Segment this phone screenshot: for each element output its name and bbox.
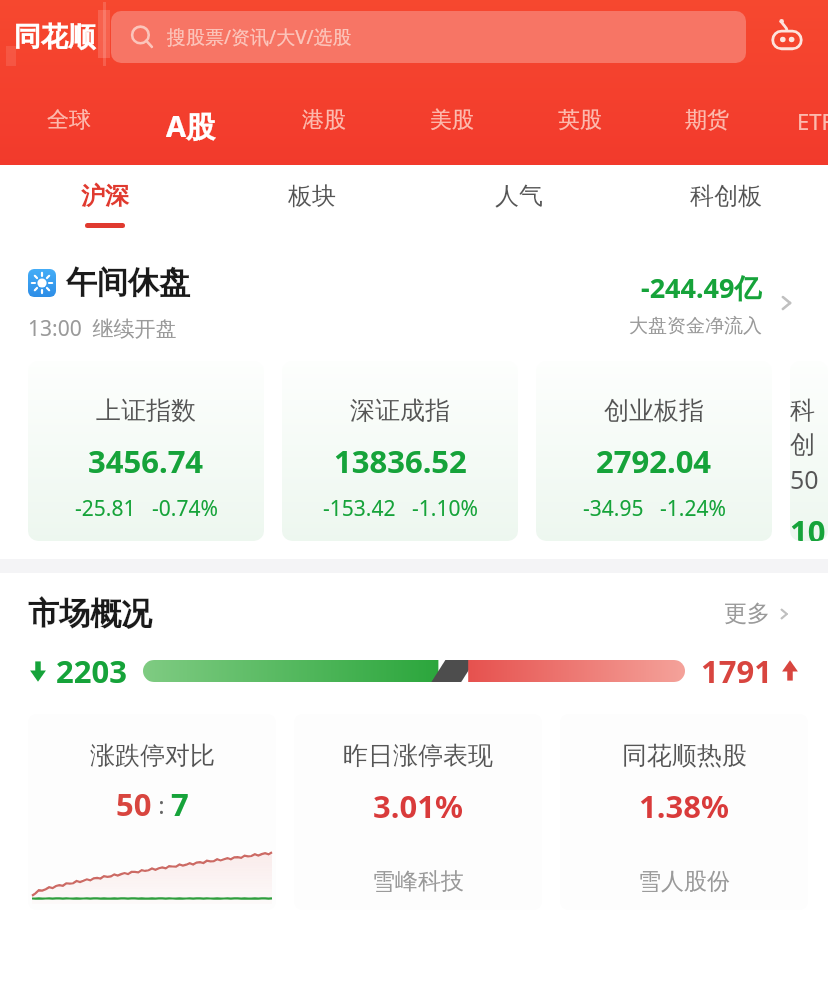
button[interactable]: 同花顺 <box>14 20 95 54</box>
button[interactable]: 沪深 <box>71 175 139 234</box>
staticText: 科创50 <box>790 395 828 496</box>
staticText: 午间休盘 <box>66 263 190 302</box>
button[interactable]: 搜股票/资讯/大V/选股 <box>111 11 746 63</box>
staticText: : <box>152 788 171 821</box>
staticText: 昨日涨停表现 <box>343 740 493 771</box>
staticText: 同花顺热股 <box>622 740 747 771</box>
staticText: 7 <box>171 783 189 825</box>
button[interactable]: 期货 <box>679 96 735 144</box>
staticText: 沪深 <box>81 181 129 211</box>
button[interactable]: 美股 <box>424 96 480 144</box>
button[interactable]: 板块 <box>278 175 346 229</box>
staticText: 2203 <box>56 650 127 692</box>
staticText: 1089.26 <box>790 510 828 541</box>
button[interactable]: AI assistant <box>760 10 814 64</box>
staticText: -25.81 <box>75 494 136 523</box>
button[interactable]: 全球 <box>41 96 97 144</box>
staticText: -153.42 <box>323 494 396 523</box>
button[interactable]: 人气 <box>485 175 553 229</box>
staticText: -1.10% <box>412 494 478 523</box>
staticText: -244.49亿 <box>641 269 762 306</box>
staticText: 3.01% <box>373 785 463 827</box>
staticText: A股 <box>166 106 216 146</box>
staticText: ETF <box>797 106 828 136</box>
staticText: 更多 <box>724 599 770 628</box>
button[interactable]: 深证成指 <box>282 361 518 541</box>
staticText: 全球 <box>47 106 91 134</box>
staticText: -0.74% <box>152 494 218 523</box>
staticText: 雪峰科技 <box>372 867 464 896</box>
staticText: 13836.52 <box>334 440 467 482</box>
staticText: 上证指数 <box>96 395 196 426</box>
staticText: 美股 <box>430 106 474 134</box>
button[interactable]: 科创50 <box>790 361 828 541</box>
staticText: 期货 <box>685 106 729 134</box>
button[interactable]: 上证指数 <box>28 361 264 541</box>
button[interactable]: 同花顺热股 <box>560 714 808 910</box>
button[interactable]: 科创板 <box>680 175 772 229</box>
staticText: 深证成指 <box>350 395 450 426</box>
staticText: 市场概况 <box>28 594 152 633</box>
staticText: 3456.74 <box>88 440 204 482</box>
staticText: 涨跌停对比 <box>90 740 215 771</box>
staticText: -34.95 <box>583 494 644 523</box>
button[interactable]: 创业板指 <box>536 361 772 541</box>
staticText: 50 <box>116 783 152 825</box>
staticText: 创业板指 <box>604 395 704 426</box>
button[interactable]: 涨跌停对比 <box>28 714 276 910</box>
staticText: 雪人股份 <box>638 867 730 896</box>
staticText: 13:00 继续开盘 <box>28 314 177 343</box>
button[interactable]: 更多 <box>718 593 800 634</box>
staticText: 大盘资金净流入 <box>629 314 762 338</box>
button[interactable]: A股 <box>160 96 222 156</box>
button[interactable]: ETF <box>791 96 828 146</box>
button[interactable]: 昨日涨停表现 <box>294 714 542 910</box>
staticText: 人气 <box>495 181 543 211</box>
staticText: 科创板 <box>690 181 762 211</box>
staticText: 2792.04 <box>596 440 712 482</box>
staticText: 板块 <box>288 181 336 211</box>
staticText: 搜股票/资讯/大V/选股 <box>167 24 352 50</box>
staticText: 1791 <box>701 650 772 692</box>
staticText: 英股 <box>558 106 602 134</box>
button[interactable]: 英股 <box>552 96 608 144</box>
staticText: 港股 <box>302 106 346 134</box>
button[interactable]: 午间休盘 <box>0 263 828 343</box>
staticText: -1.24% <box>660 494 726 523</box>
staticText: 1.38% <box>639 785 729 827</box>
button[interactable]: 港股 <box>296 96 352 144</box>
